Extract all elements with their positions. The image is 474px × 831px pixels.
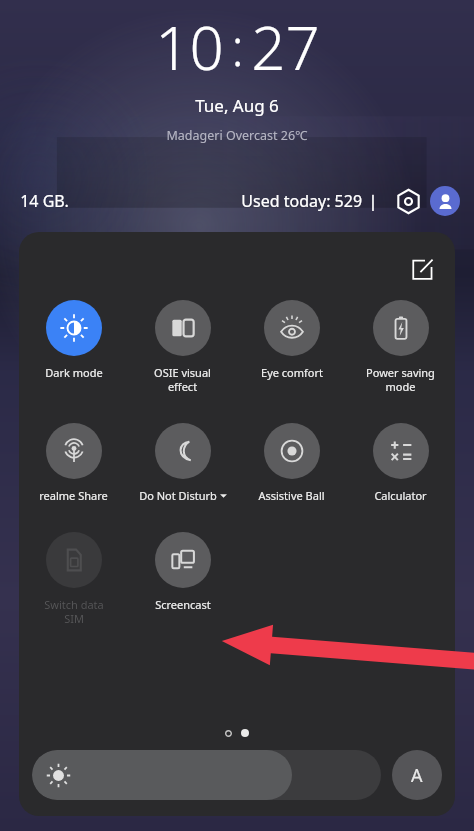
staticText: Dark mode bbox=[45, 365, 103, 380]
button[interactable]: Eye comfort bbox=[237, 300, 346, 380]
button[interactable]: Auto brightness bbox=[392, 750, 442, 800]
staticText: Eye comfort bbox=[261, 365, 323, 380]
button[interactable]: Brightness bbox=[32, 750, 381, 800]
staticText: Do Not Disturb bbox=[139, 488, 217, 503]
button[interactable]: Assistive Ball bbox=[237, 423, 346, 503]
staticText: realme Share bbox=[39, 488, 108, 503]
staticText: 10 bbox=[155, 6, 224, 88]
button[interactable]: Screencast bbox=[128, 532, 237, 612]
staticText: Assistive Ball bbox=[258, 488, 325, 503]
staticText: Switch data SIM bbox=[44, 597, 104, 626]
button[interactable]: Calculator bbox=[346, 423, 455, 503]
staticText: A bbox=[411, 763, 423, 788]
button[interactable]: realme Share bbox=[19, 423, 128, 503]
staticText: 27 bbox=[251, 6, 320, 88]
button[interactable]: Settings bbox=[392, 185, 424, 217]
button[interactable]: Dark mode bbox=[19, 300, 128, 380]
button[interactable]: Edit tiles bbox=[405, 252, 439, 286]
staticText: : bbox=[231, 13, 244, 81]
staticText: 14 GB. bbox=[20, 190, 69, 212]
staticText: Calculator bbox=[374, 488, 427, 503]
staticText: Power saving mode bbox=[366, 365, 435, 394]
button[interactable]: User profile bbox=[430, 186, 460, 216]
button[interactable]: Switch data SIM bbox=[19, 532, 128, 626]
staticText: Tue, Aug 6 bbox=[195, 94, 279, 117]
button[interactable]: Power saving mode bbox=[346, 300, 455, 394]
button[interactable]: Do Not Disturb bbox=[128, 423, 237, 503]
staticText: Madageri Overcast 26℃ bbox=[166, 127, 308, 144]
staticText: Used today: 529 ❘ bbox=[241, 190, 380, 212]
button[interactable]: OSIE visual effect bbox=[128, 300, 237, 394]
staticText: Screencast bbox=[155, 597, 211, 612]
staticText: OSIE visual effect bbox=[154, 365, 211, 394]
